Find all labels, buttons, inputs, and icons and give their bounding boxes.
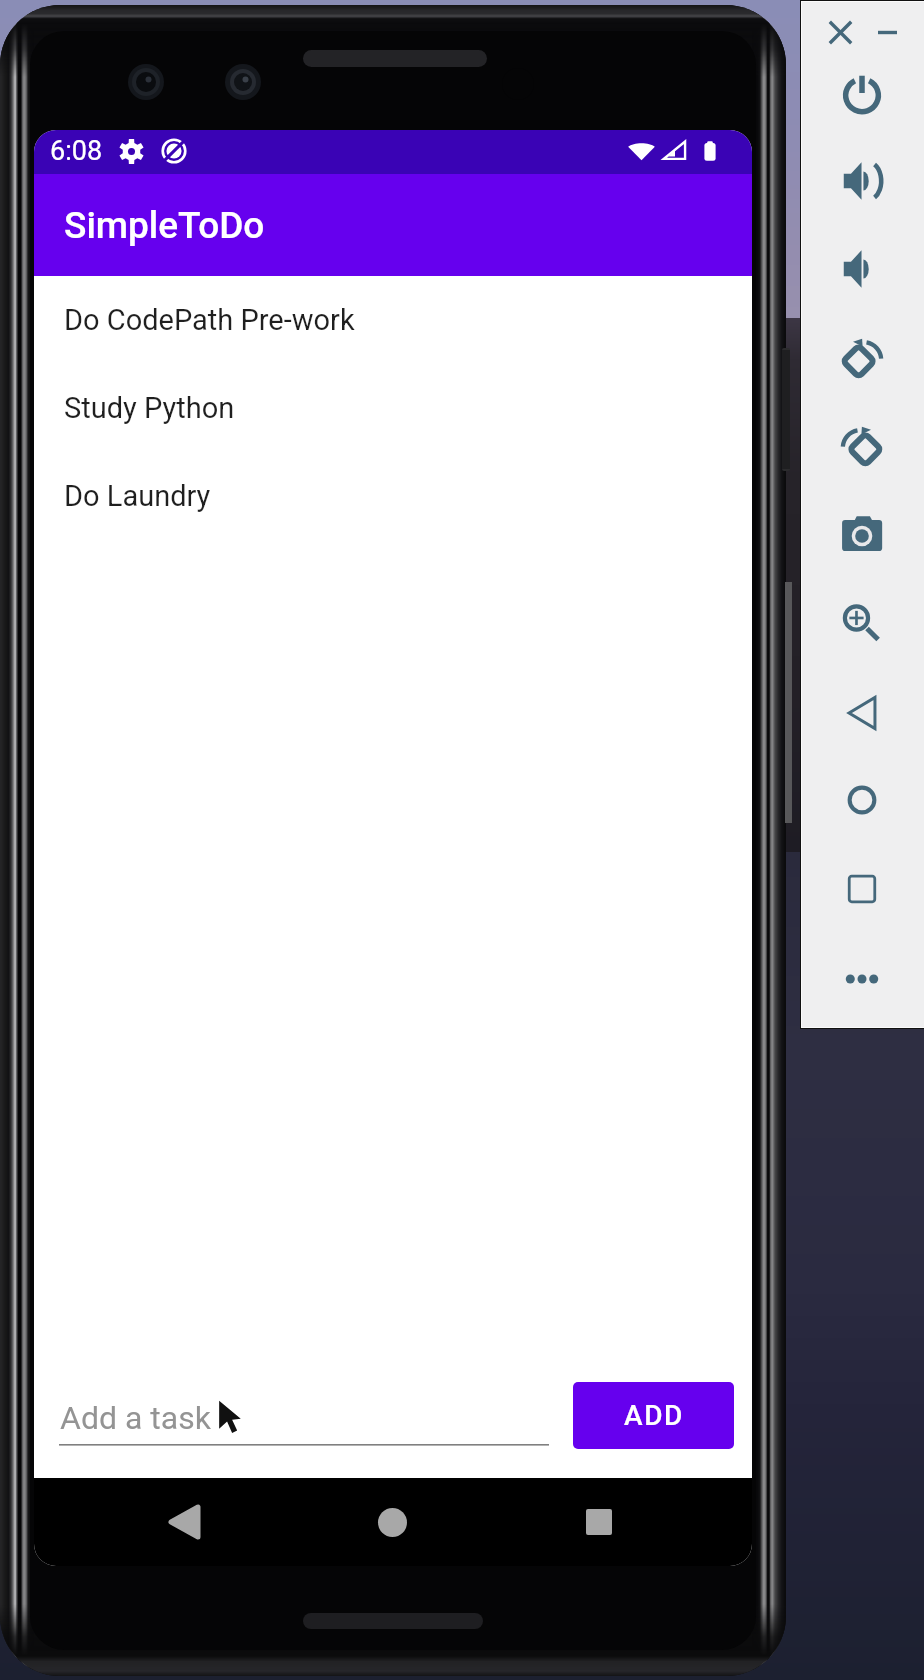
staticText: Do Laundry [64, 479, 211, 513]
button[interactable]: Close [822, 14, 858, 50]
button[interactable]: Rotate left [833, 328, 891, 386]
staticText: SimpleToDo [64, 204, 265, 247]
button[interactable]: Back [833, 684, 891, 742]
staticText: Add a task [60, 1399, 211, 1437]
button[interactable]: ADD [573, 1382, 734, 1449]
staticText: 6:08 [50, 135, 103, 167]
button[interactable]: Add a task [59, 1399, 549, 1446]
button[interactable]: Home [356, 1478, 428, 1566]
button[interactable]: Rotate right [833, 416, 891, 474]
staticText: Study Python [64, 391, 235, 425]
button[interactable]: Recents [563, 1478, 635, 1566]
button[interactable]: Take screenshot [833, 500, 891, 558]
staticText: ADD [624, 1399, 684, 1432]
button[interactable]: More [833, 950, 891, 1008]
button[interactable]: Overview [833, 860, 891, 918]
staticText: Do CodePath Pre-work [64, 303, 355, 337]
button[interactable]: Minimize [869, 14, 905, 50]
button[interactable]: Volume down [833, 240, 891, 298]
button[interactable]: Do Laundry [34, 452, 752, 540]
button[interactable]: Back [147, 1478, 291, 1566]
button[interactable]: Power [833, 64, 891, 122]
button[interactable]: Volume up [833, 152, 891, 210]
button[interactable]: Zoom [833, 594, 891, 652]
button[interactable]: Do CodePath Pre-work [34, 276, 752, 364]
button[interactable]: Home [833, 771, 891, 829]
button[interactable]: Study Python [34, 364, 752, 452]
